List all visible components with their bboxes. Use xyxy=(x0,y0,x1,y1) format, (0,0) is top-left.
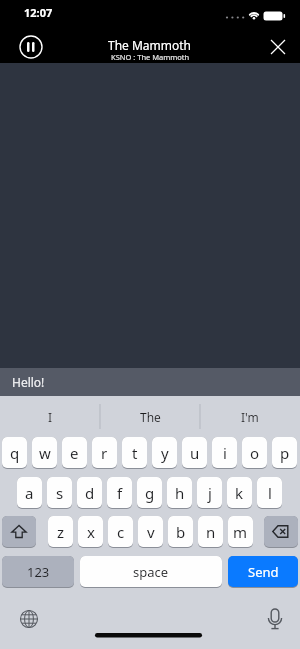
staticText: x xyxy=(87,522,95,542)
button[interactable]: o xyxy=(242,437,267,469)
staticText: l xyxy=(268,483,272,503)
staticText: g xyxy=(145,483,155,503)
button[interactable]: space xyxy=(80,556,222,588)
staticText: z xyxy=(57,522,65,542)
staticText: The xyxy=(140,409,161,425)
staticText: 12:07 xyxy=(24,5,53,20)
button[interactable] xyxy=(13,603,45,635)
button[interactable]: d xyxy=(77,477,102,509)
button[interactable]: 123 xyxy=(2,556,74,588)
staticText: f xyxy=(117,483,123,503)
staticText: w xyxy=(39,443,51,463)
button[interactable]: r xyxy=(92,437,117,469)
button[interactable]: m xyxy=(228,516,253,548)
staticText: h xyxy=(175,483,185,503)
button[interactable] xyxy=(259,604,291,636)
button[interactable]: z xyxy=(48,516,73,548)
staticText: k xyxy=(235,483,244,503)
button[interactable]: e xyxy=(62,437,87,469)
staticText: space xyxy=(133,563,169,581)
button[interactable]: v xyxy=(138,516,163,548)
staticText: t xyxy=(132,443,138,463)
staticText: i xyxy=(223,443,227,463)
staticText: n xyxy=(206,522,216,542)
button[interactable] xyxy=(264,516,298,548)
button[interactable]: w xyxy=(32,437,57,469)
staticText: y xyxy=(161,443,169,463)
button[interactable]: i xyxy=(212,437,237,469)
button[interactable]: The xyxy=(100,396,200,437)
staticText: q xyxy=(10,443,20,463)
button[interactable]: k xyxy=(227,477,252,509)
button[interactable]: x xyxy=(78,516,103,548)
staticText: s xyxy=(56,483,64,503)
staticText: a xyxy=(25,483,34,503)
button[interactable]: f xyxy=(107,477,132,509)
button[interactable]: h xyxy=(167,477,192,509)
staticText: v xyxy=(147,522,155,542)
button[interactable]: q xyxy=(2,437,27,469)
button[interactable]: Hello! xyxy=(0,368,300,396)
button[interactable]: n xyxy=(198,516,223,548)
button[interactable] xyxy=(266,35,290,59)
button[interactable] xyxy=(19,35,43,59)
button[interactable]: I xyxy=(0,396,100,437)
button[interactable]: c xyxy=(108,516,133,548)
staticText: j xyxy=(208,483,212,503)
staticText: Send xyxy=(248,563,279,581)
button[interactable]: t xyxy=(122,437,147,469)
staticText: m xyxy=(233,522,248,542)
button[interactable]: y xyxy=(152,437,177,469)
button[interactable]: p xyxy=(272,437,297,469)
staticText: u xyxy=(190,443,200,463)
staticText: o xyxy=(250,443,260,463)
staticText: p xyxy=(280,443,290,463)
staticText: I'm xyxy=(241,409,259,425)
button[interactable]: u xyxy=(182,437,207,469)
button[interactable]: l xyxy=(257,477,282,509)
button[interactable]: Send xyxy=(228,556,298,588)
staticText: d xyxy=(85,483,95,503)
staticText: KSNO : The Mammoth xyxy=(111,52,190,62)
button[interactable]: a xyxy=(17,477,42,509)
button[interactable]: s xyxy=(47,477,72,509)
button[interactable] xyxy=(2,516,36,548)
staticText: I xyxy=(48,409,53,425)
staticText: b xyxy=(176,522,186,542)
button[interactable]: j xyxy=(197,477,222,509)
button[interactable]: b xyxy=(168,516,193,548)
staticText: e xyxy=(70,443,79,463)
staticText: Hello! xyxy=(12,374,45,390)
staticText: r xyxy=(101,443,108,463)
button[interactable]: g xyxy=(137,477,162,509)
button[interactable]: I'm xyxy=(200,396,300,437)
staticText: 123 xyxy=(27,563,50,581)
staticText: c xyxy=(117,522,125,542)
staticText: The Mammoth xyxy=(108,37,192,53)
